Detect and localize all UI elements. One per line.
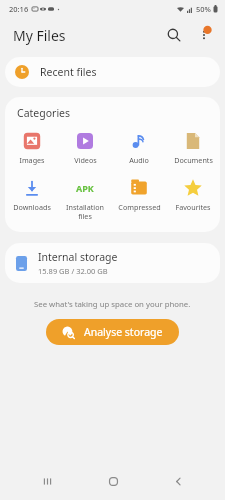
button[interactable]: More options [189,20,219,50]
button[interactable]: Downloads [5,177,58,213]
button[interactable]: Audio [112,130,166,166]
button[interactable]: Back [160,463,196,499]
button[interactable]: Home [95,463,131,499]
button[interactable]: Recents [29,463,65,499]
staticText: My Files [13,26,66,45]
staticText: 50% [196,4,211,14]
staticText: 15.89 GB / 32.00 GB [38,266,108,276]
staticText: Recent files [40,65,97,79]
button[interactable]: Videos [58,130,112,166]
button[interactable]: Documents [166,130,220,166]
staticText: Audio [129,155,149,165]
button[interactable]: Compressed [112,177,166,213]
staticText: Analyse storage [84,325,163,339]
staticText: Favourites [175,202,211,212]
button[interactable]: Favourites [166,177,220,213]
staticText: Videos [74,155,97,165]
staticText: Documents [174,155,213,165]
button[interactable]: Internal storage [5,243,220,283]
button[interactable]: Search [159,20,189,50]
button[interactable]: Recent files [5,57,220,87]
staticText: Internal storage [38,250,118,264]
staticText: Installation files [66,202,104,221]
staticText: Compressed [118,202,161,212]
staticText: Categories [17,106,71,120]
staticText: Images [19,155,45,165]
staticText: 20:16 [9,4,29,14]
staticText: Downloads [13,202,51,212]
button[interactable]: APK [58,177,112,222]
button[interactable]: Images [5,130,58,166]
staticText: APK [76,182,94,194]
button[interactable]: Analyse storage [46,319,179,345]
staticText: See what's taking up space on your phone… [34,299,191,310]
